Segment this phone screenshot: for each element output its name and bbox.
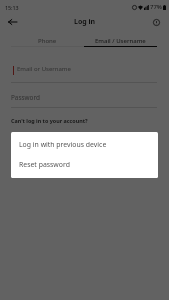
staticText: 15:13 <box>5 4 19 11</box>
button[interactable]: Password <box>11 90 157 104</box>
button[interactable]: Email / Username <box>84 34 157 47</box>
staticText: Log in with previous device <box>19 140 107 149</box>
button[interactable]: Log in with previous device <box>11 134 158 154</box>
staticText: Password <box>11 93 40 102</box>
staticText: Log in <box>74 17 96 27</box>
button[interactable]: Phone <box>11 34 84 47</box>
button[interactable]: Back <box>4 14 20 30</box>
button[interactable]: Can't log in to your account? <box>11 115 88 126</box>
staticText: Phone <box>38 37 57 45</box>
staticText: Reset password <box>19 160 70 169</box>
staticText: Email / Username <box>95 37 146 45</box>
staticText: Email or Username <box>17 65 71 73</box>
staticText: Can't log in to your account? <box>11 117 88 124</box>
staticText: 77% <box>150 3 162 11</box>
button[interactable]: Reset password <box>11 154 158 174</box>
button[interactable]: Help <box>150 16 162 28</box>
button[interactable]: Email or Username <box>11 62 157 76</box>
